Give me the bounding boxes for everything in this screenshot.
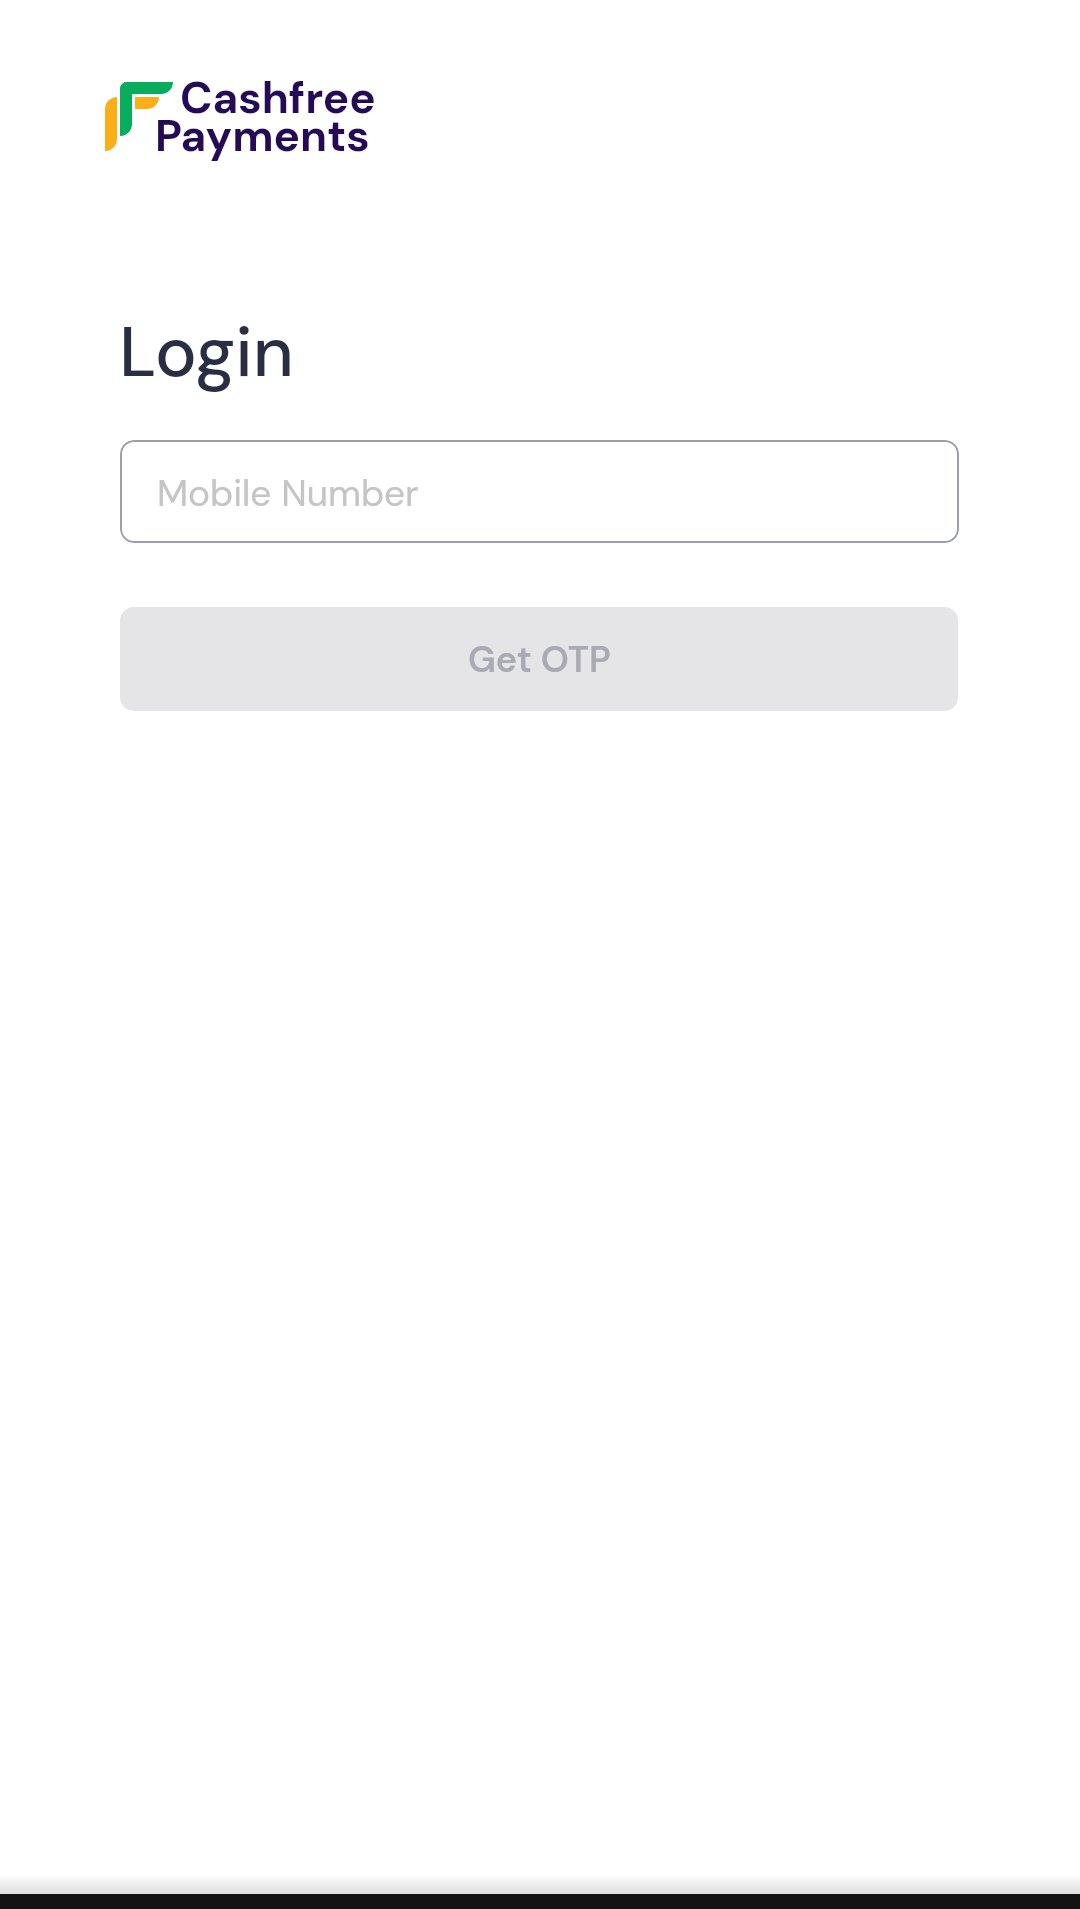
staticText: Get OTP [468,636,611,683]
staticText: Payments [155,107,370,164]
other: Cashfree Payments [105,69,375,154]
staticText: Cashfree [180,69,376,126]
staticText: Login [119,307,294,398]
button[interactable]: Mobile Number [120,440,959,543]
staticText: Mobile Number [157,469,419,517]
button[interactable]: Get OTP [120,607,958,711]
